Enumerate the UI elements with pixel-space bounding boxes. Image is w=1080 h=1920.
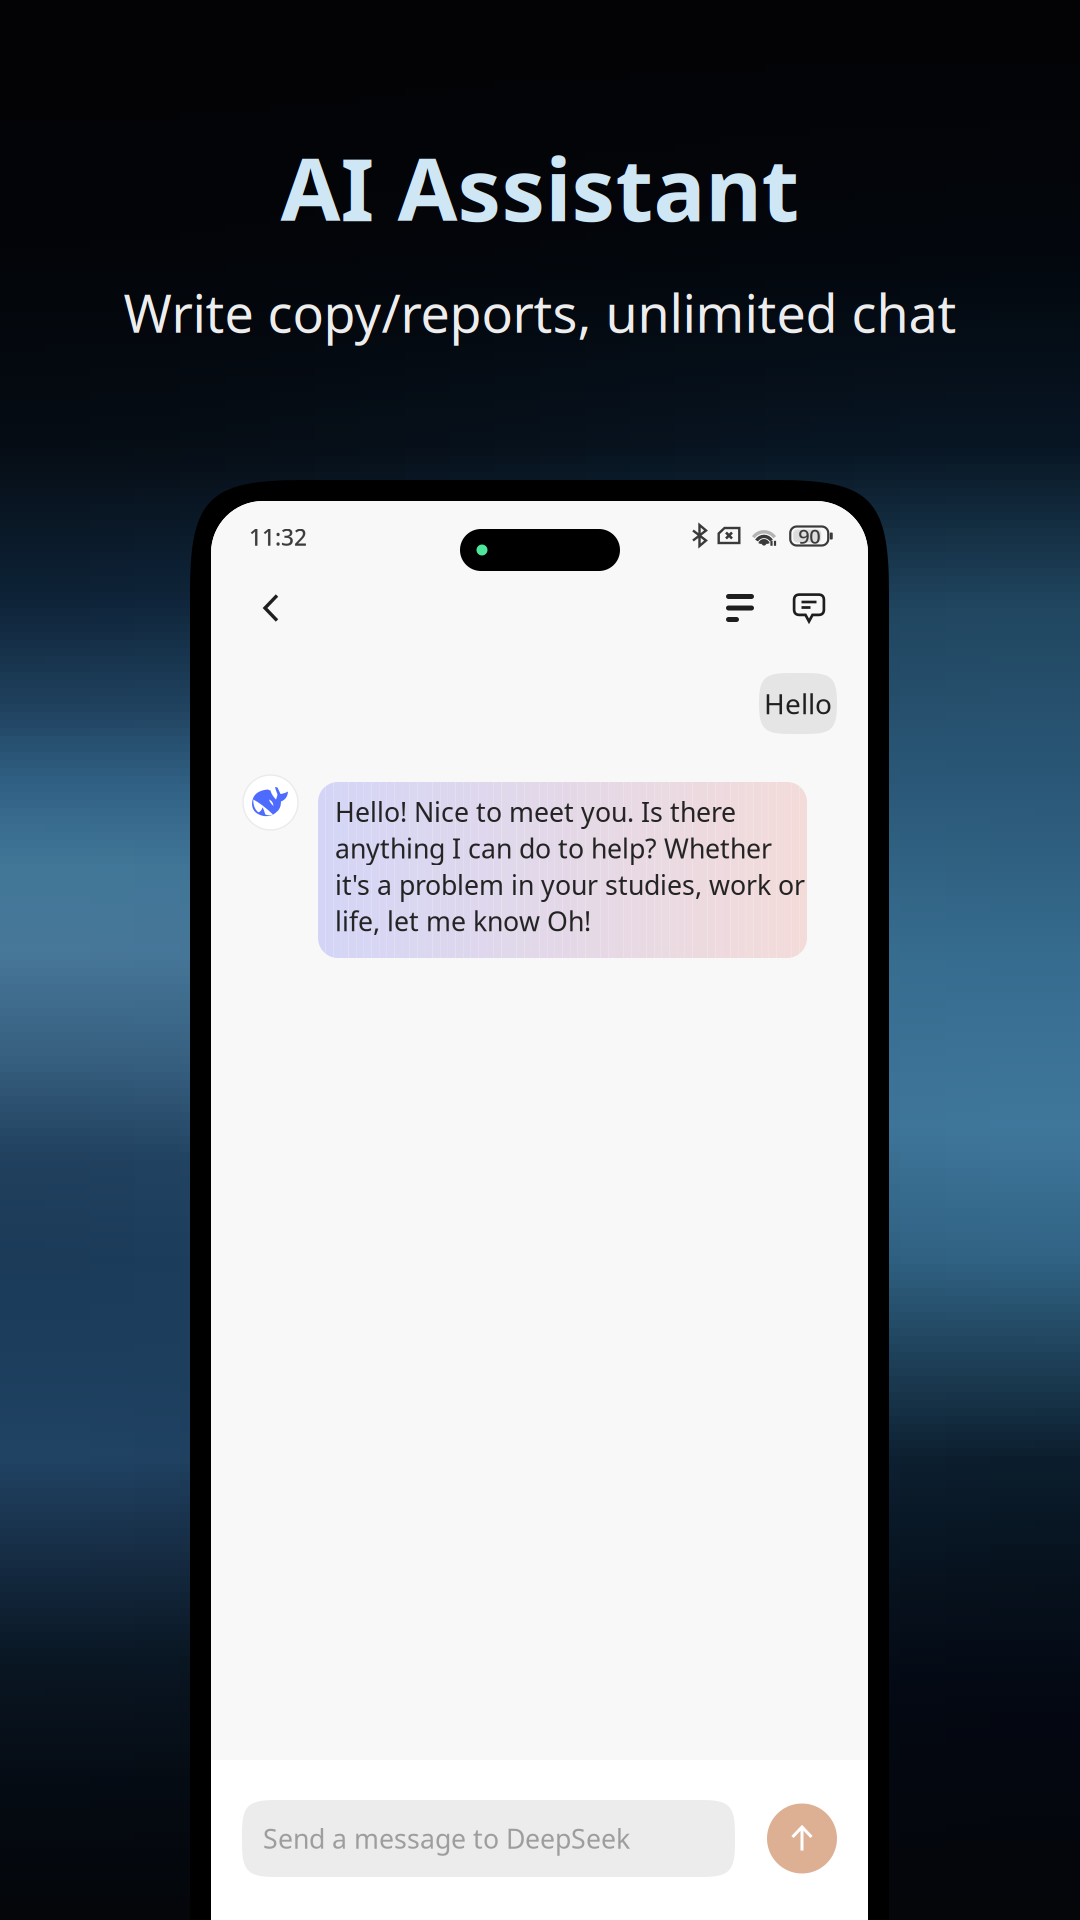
staticText: Hello <box>764 685 832 722</box>
staticText: AI Assistant <box>280 130 799 245</box>
staticText: Hello! Nice to meet you. Is there anythi… <box>335 794 805 939</box>
staticText: Send a message to DeepSeek <box>263 1821 630 1856</box>
button[interactable]: Chat history <box>710 576 770 640</box>
button[interactable]: Send a message to DeepSeek <box>242 1800 735 1877</box>
staticText: 90 <box>798 523 820 549</box>
staticText: 11:32 <box>249 522 307 552</box>
button[interactable]: Send <box>767 1803 837 1873</box>
button[interactable]: Back <box>241 576 301 640</box>
button[interactable]: New chat <box>779 576 839 640</box>
staticText: Write copy/reports, unlimited chat <box>123 278 956 347</box>
